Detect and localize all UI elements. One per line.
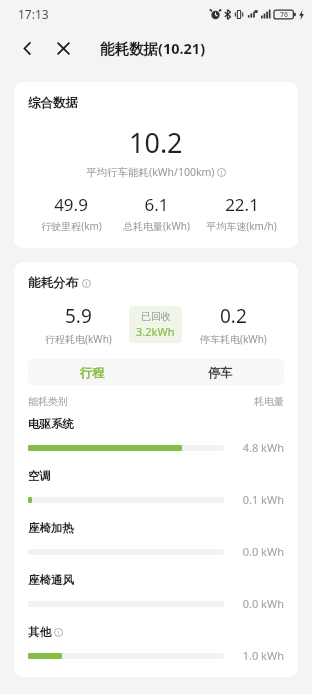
staticText: 耗电量 [254, 395, 284, 408]
staticText: 22.1 [225, 193, 259, 216]
staticText: 0.1 kWh [242, 492, 284, 507]
button[interactable]: 座椅通风 [28, 573, 284, 611]
button[interactable]: 其他 [28, 625, 284, 663]
staticText: 能耗分布 [28, 275, 78, 291]
staticText: 平均行车能耗(kWh/100km) [86, 165, 215, 179]
staticText: 座椅加热 [28, 521, 74, 535]
staticText: 0.0 kWh [242, 544, 284, 559]
button[interactable]: 停车 [156, 359, 284, 385]
staticText: 行程 [80, 365, 104, 380]
button[interactable]: 座椅加热 [28, 521, 284, 559]
staticText: 空调 [28, 469, 51, 483]
staticText: 1.0 kWh [242, 648, 284, 663]
staticText: 总耗电量(kWh) [123, 219, 190, 233]
staticText: 10.2 [129, 124, 183, 161]
staticText: 6.1 [144, 193, 169, 216]
staticText: 17:13 [18, 6, 49, 22]
button[interactable]: Close [48, 33, 78, 63]
button[interactable]: 行程 [28, 359, 156, 385]
staticText: 4.8 kWh [242, 440, 284, 455]
staticText: 停车 [208, 365, 232, 380]
staticText: 行驶里程(km) [41, 219, 102, 233]
staticText: 其他 [28, 625, 51, 639]
staticText: 5.9 [65, 303, 92, 329]
staticText: 已回收 [141, 310, 171, 323]
staticText: 能耗类别 [28, 395, 68, 408]
staticText: 电驱系统 [28, 417, 74, 431]
staticText: 能耗数据(10.21) [100, 38, 206, 58]
button[interactable]: 电驱系统 [28, 417, 284, 455]
staticText: 综合数据 [28, 95, 78, 111]
button[interactable]: Back [12, 33, 42, 63]
button[interactable]: 空调 [28, 469, 284, 507]
staticText: 平均车速(km/h) [206, 219, 277, 233]
staticText: 座椅通风 [28, 573, 74, 587]
staticText: 行程耗电(kWh) [45, 332, 112, 346]
staticText: 49.9 [54, 193, 88, 216]
staticText: 0.2 [220, 303, 247, 329]
staticText: 0.0 kWh [242, 596, 284, 611]
staticText: 76 [280, 10, 289, 20]
staticText: 停车耗电(kWh) [200, 332, 267, 346]
staticText: 3.2kWh [136, 324, 175, 339]
